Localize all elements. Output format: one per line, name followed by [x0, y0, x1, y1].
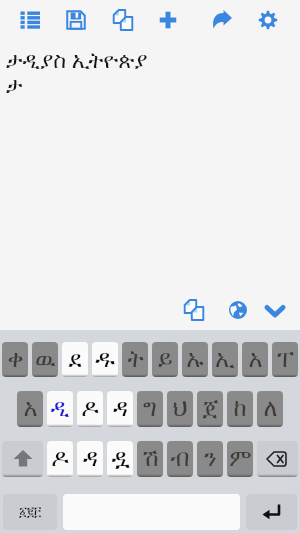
- staticText: ዷ: [111, 447, 130, 471]
- button[interactable]: ፐ: [272, 342, 298, 377]
- staticText: ቀ: [7, 348, 24, 372]
- staticText: ዶ: [81, 397, 99, 421]
- button[interactable]: ሽ: [137, 441, 163, 477]
- staticText: ዶ: [51, 447, 69, 471]
- button[interactable]: ኢ: [212, 342, 238, 377]
- staticText: ከ: [233, 397, 247, 421]
- staticText: ኡ: [186, 348, 204, 372]
- button[interactable]: ቀ: [2, 342, 28, 377]
- staticText: ዳ: [113, 397, 128, 421]
- staticText: ት: [127, 348, 144, 372]
- button[interactable]: ት: [122, 342, 148, 377]
- button[interactable]: List: [13, 3, 47, 37]
- staticText: ዳ: [83, 447, 98, 471]
- button[interactable]: አ: [242, 342, 268, 377]
- button[interactable]: Backspace: [257, 441, 298, 477]
- staticText: ዱ: [95, 348, 115, 372]
- button[interactable]: Share: [205, 3, 239, 37]
- staticText: ህ: [172, 397, 188, 421]
- button[interactable]: ዶ: [47, 441, 73, 477]
- staticText: ዉ: [35, 348, 56, 372]
- staticText: ፩፪፫: [19, 506, 42, 519]
- button[interactable]: ጀ: [197, 391, 223, 427]
- staticText: ኢ: [215, 348, 235, 372]
- staticText: ን: [204, 447, 217, 471]
- button[interactable]: Copy: [177, 293, 211, 327]
- staticText: አ: [23, 397, 38, 421]
- button[interactable]: Settings: [251, 3, 285, 37]
- staticText: ጀ: [202, 397, 219, 421]
- button[interactable]: ዶ: [77, 391, 103, 427]
- button[interactable]: ዳ: [107, 391, 133, 427]
- staticText: ፐ: [277, 348, 294, 372]
- button[interactable]: ም: [227, 441, 253, 477]
- staticText: ብ: [170, 447, 190, 471]
- button[interactable]: ዉ: [32, 342, 58, 377]
- button[interactable]: ፩፪፫: [3, 494, 57, 530]
- button[interactable]: ዱ: [92, 342, 118, 377]
- button[interactable]: አ: [17, 391, 43, 427]
- button[interactable]: ዷ: [107, 441, 133, 477]
- button[interactable]: ይ: [152, 342, 178, 377]
- staticText: ግ: [143, 397, 157, 421]
- staticText: ሽ: [142, 447, 159, 471]
- staticText: ታዲያስ ኢትዮጵያ ታ: [6, 44, 161, 97]
- staticText: ይ: [158, 348, 173, 372]
- staticText: ለ: [263, 397, 278, 421]
- staticText: ዲ: [50, 397, 70, 421]
- button[interactable]: ዲ: [47, 391, 73, 427]
- button[interactable]: ለ: [257, 391, 283, 427]
- staticText: አ: [248, 348, 263, 372]
- button[interactable]: Enter: [246, 494, 297, 530]
- button[interactable]: Collapse keyboard: [258, 294, 292, 328]
- button[interactable]: ደ: [62, 342, 88, 377]
- button[interactable]: Language: [221, 293, 255, 327]
- button[interactable]: ከ: [227, 391, 253, 427]
- button[interactable]: ኡ: [182, 342, 208, 377]
- button[interactable]: Save: [59, 3, 93, 37]
- button[interactable]: Add: [151, 3, 185, 37]
- button[interactable]: ን: [197, 441, 223, 477]
- button[interactable]: Shift: [2, 441, 43, 477]
- button[interactable]: Copy: [106, 3, 140, 37]
- staticText: ም: [229, 447, 252, 471]
- staticText: ደ: [68, 348, 82, 372]
- button[interactable]: ግ: [137, 391, 163, 427]
- button[interactable]: ህ: [167, 391, 193, 427]
- button[interactable]: ዳ: [77, 441, 103, 477]
- button[interactable]: ብ: [167, 441, 193, 477]
